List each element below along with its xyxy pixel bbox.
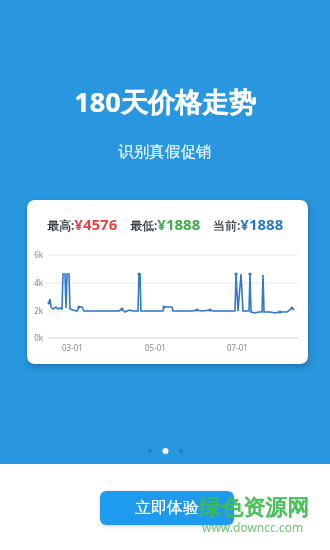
staticText: www.downcc.com (202, 519, 304, 535)
staticText: 180天价格走势 (0, 83, 330, 120)
staticText: 07-01 (227, 342, 248, 353)
staticText: 03-01 (62, 342, 83, 353)
staticText: 4k (29, 277, 43, 288)
staticText: 识别真假促销 (0, 142, 330, 162)
staticText: 0k (29, 332, 43, 343)
staticText: 立即体验 (135, 498, 199, 518)
staticText: 05-01 (145, 342, 166, 353)
staticText: 绿色资源网 (199, 494, 309, 522)
staticText: 当前:¥1888 (213, 214, 284, 234)
staticText: 6k (29, 249, 43, 260)
button[interactable] (140, 441, 190, 461)
staticText: 最高:¥4576 (47, 214, 118, 234)
button[interactable]: 立即体验 (100, 491, 234, 525)
staticText: 最低:¥1888 (130, 214, 201, 234)
staticText: 2k (29, 305, 43, 316)
